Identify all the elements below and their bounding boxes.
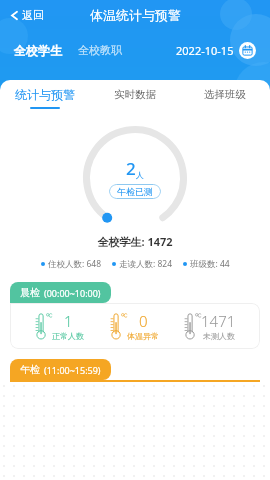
staticText: 住校人数: 648 bbox=[48, 258, 102, 270]
staticText: 人 bbox=[136, 170, 144, 180]
button[interactable]: 午检已测 bbox=[109, 184, 161, 199]
staticText: 班级数: 44 bbox=[190, 258, 230, 270]
button[interactable]: 选择班级 bbox=[180, 80, 270, 116]
staticText: 未测人数 bbox=[203, 331, 235, 341]
staticText: 晨检 bbox=[20, 286, 40, 299]
button[interactable]: 2022-10-15 bbox=[174, 40, 258, 61]
staticText: 1471 bbox=[201, 311, 236, 331]
button[interactable]: 实时数据 bbox=[90, 80, 180, 116]
button[interactable]: 晨检 bbox=[10, 282, 111, 303]
staticText: 2 bbox=[126, 157, 136, 180]
staticText: 2022-10-15 bbox=[176, 43, 234, 58]
staticText: 实时数据 bbox=[114, 88, 156, 101]
staticText: 1 bbox=[64, 311, 73, 331]
staticText: 全校教职 bbox=[78, 43, 122, 57]
staticText: 选择班级 bbox=[204, 88, 246, 101]
button[interactable]: 午检 bbox=[10, 359, 111, 380]
staticText: (11:00~15:59) bbox=[44, 364, 101, 376]
staticText: 正常人数 bbox=[52, 331, 84, 341]
button[interactable]: 全校教职 bbox=[76, 41, 124, 59]
staticText: 统计与预警 bbox=[15, 87, 75, 102]
staticText: 全校学生 bbox=[14, 43, 62, 58]
staticText: 午检 bbox=[20, 363, 40, 376]
button[interactable]: 全校学生 bbox=[12, 41, 64, 60]
staticText: 返回 bbox=[22, 8, 44, 22]
staticText: 0 bbox=[139, 311, 148, 331]
staticText: 全校学生: 1472 bbox=[0, 234, 270, 249]
button[interactable]: 返回 bbox=[6, 4, 48, 26]
button[interactable]: 统计与预警 bbox=[0, 80, 90, 116]
staticText: (00:00~10:00) bbox=[44, 287, 101, 299]
staticText: 体温异常 bbox=[127, 331, 159, 341]
staticText: 午检已测 bbox=[117, 186, 153, 197]
staticText: 体温统计与预警 bbox=[90, 7, 181, 23]
staticText: 走读人数: 824 bbox=[119, 258, 173, 270]
